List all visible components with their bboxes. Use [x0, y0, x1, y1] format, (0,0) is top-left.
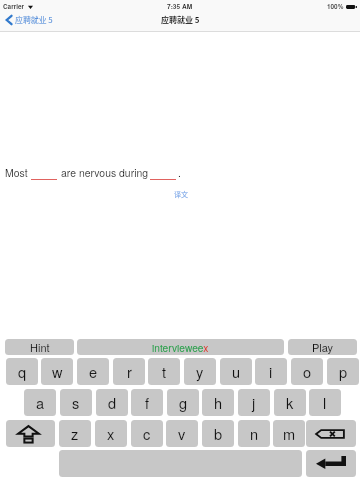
staticText: k [286, 392, 294, 413]
staticText: p [339, 361, 348, 382]
button[interactable]: d [96, 389, 128, 416]
button[interactable]: h [202, 389, 234, 416]
staticText: are nervous during [61, 165, 149, 180]
button[interactable]: l [309, 389, 341, 416]
staticText: Carrier [3, 2, 24, 11]
button[interactable]: u [220, 358, 252, 385]
button[interactable]: i [255, 358, 287, 385]
button[interactable]: Hint [5, 339, 74, 355]
button[interactable]: a [24, 389, 56, 416]
staticText: i [269, 361, 273, 382]
staticText: Most [5, 165, 28, 180]
staticText: r [127, 361, 132, 382]
button[interactable]: w [41, 358, 73, 385]
staticText: j [252, 392, 256, 413]
staticText: a [36, 392, 45, 413]
button[interactable]: v [166, 420, 198, 447]
staticText: e [89, 361, 98, 382]
staticText: q [18, 361, 27, 382]
button[interactable]: Shift [6, 420, 55, 447]
button[interactable]: f [131, 389, 163, 416]
staticText: o [303, 361, 312, 382]
staticText: t [162, 361, 167, 382]
button[interactable]: 应聘就业 5 [5, 13, 54, 26]
button[interactable]: g [167, 389, 199, 416]
staticText: s [72, 392, 80, 413]
button[interactable]: x [95, 420, 127, 447]
staticText: w [52, 361, 63, 382]
staticText: Play [312, 339, 334, 355]
button[interactable]: b [202, 420, 234, 447]
staticText: 应聘就业 5 [15, 14, 53, 25]
staticText: intervieweex [152, 340, 209, 355]
staticText: g [179, 392, 188, 413]
staticText: x [107, 423, 115, 444]
button[interactable]: 译文 [171, 186, 192, 202]
button[interactable]: s [60, 389, 92, 416]
button[interactable]: Delete [306, 420, 356, 447]
button[interactable]: t [148, 358, 180, 385]
button[interactable]: z [59, 420, 91, 447]
button[interactable]: Play [288, 339, 357, 355]
staticText: n [250, 423, 259, 444]
staticText: y [196, 361, 204, 382]
staticText: h [214, 392, 223, 413]
staticText: u [232, 361, 241, 382]
button[interactable]: p [327, 358, 359, 385]
staticText: f [145, 392, 150, 413]
staticText: l [323, 392, 327, 413]
staticText: 译文 [174, 189, 189, 199]
button[interactable]: k [274, 389, 306, 416]
button[interactable]: r [113, 358, 145, 385]
button[interactable]: j [238, 389, 270, 416]
button[interactable]: e [77, 358, 109, 385]
staticText: z [71, 423, 79, 444]
staticText: 7:35 AM [167, 2, 193, 11]
staticText: 应聘就业 5 [161, 14, 200, 26]
button[interactable]: y [184, 358, 216, 385]
staticText: Hint [30, 339, 50, 355]
staticText: 100% [327, 2, 344, 11]
button[interactable]: q [6, 358, 38, 385]
button[interactable]: o [291, 358, 323, 385]
staticText: . [178, 165, 181, 180]
staticText: v [178, 423, 186, 444]
button[interactable]: n [238, 420, 270, 447]
button[interactable]: m [273, 420, 305, 447]
button[interactable]: Return [306, 450, 356, 477]
staticText: c [143, 423, 151, 444]
button[interactable]: c [131, 420, 163, 447]
button[interactable]: intervieweex [77, 339, 284, 355]
staticText: d [108, 392, 117, 413]
staticText: m [283, 423, 296, 444]
staticText: b [214, 423, 223, 444]
